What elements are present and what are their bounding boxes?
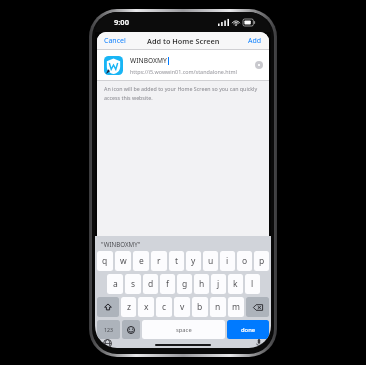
button[interactable]: x xyxy=(138,297,154,317)
button[interactable]: done xyxy=(227,320,269,339)
button[interactable]: b xyxy=(192,297,208,317)
button[interactable]: y xyxy=(186,251,201,271)
button[interactable]: k xyxy=(228,274,243,294)
button[interactable]: Cancel xyxy=(97,34,133,48)
button[interactable]: d xyxy=(143,274,158,294)
staticText: v xyxy=(180,301,185,313)
staticText: r xyxy=(157,255,161,267)
staticText: c xyxy=(162,301,167,313)
staticText: e xyxy=(139,255,144,267)
staticText: f xyxy=(166,278,169,290)
staticText: g xyxy=(182,278,188,290)
button[interactable]: o xyxy=(237,251,252,271)
button[interactable]: q xyxy=(97,251,113,271)
button[interactable]: r xyxy=(151,251,167,271)
button[interactable]: l xyxy=(245,274,260,294)
button[interactable]: 123 xyxy=(97,320,120,339)
staticText: q xyxy=(102,255,108,267)
staticText: k xyxy=(233,278,238,290)
button[interactable]: Emoji xyxy=(122,320,140,339)
staticText: i xyxy=(226,255,229,267)
button[interactable]: s xyxy=(125,274,141,294)
button[interactable]: i xyxy=(220,251,235,271)
staticText: 9:00 xyxy=(114,17,129,27)
button[interactable]: j xyxy=(211,274,226,294)
staticText: space xyxy=(176,326,192,334)
staticText: https://i5.wowwin01.com/standalone.html xyxy=(130,68,237,75)
button[interactable]: v xyxy=(174,297,190,317)
button[interactable]: Clear text xyxy=(255,61,263,69)
staticText: w xyxy=(120,255,127,267)
staticText: Add to Home Screen xyxy=(147,36,220,46)
staticText: y xyxy=(191,255,196,267)
staticText: j xyxy=(217,278,220,290)
button[interactable]: h xyxy=(194,274,209,294)
button[interactable]: Shift xyxy=(97,297,119,317)
button[interactable]: w xyxy=(115,251,131,271)
button[interactable]: Backspace xyxy=(246,297,269,317)
staticText: z xyxy=(127,301,131,313)
staticText: p xyxy=(259,255,265,267)
staticText: 123 xyxy=(104,326,113,333)
button[interactable]: Dictate xyxy=(254,339,264,348)
staticText: access this website. xyxy=(104,94,153,101)
button[interactable]: g xyxy=(177,274,192,294)
staticText: u xyxy=(208,255,214,267)
button[interactable]: u xyxy=(203,251,218,271)
staticText: h xyxy=(199,278,205,290)
staticText: x xyxy=(144,301,149,313)
staticText: s xyxy=(131,278,136,290)
staticText: Cancel xyxy=(104,36,126,46)
staticText: o xyxy=(242,255,248,267)
button[interactable]: space xyxy=(142,320,225,339)
staticText: done xyxy=(241,326,256,334)
staticText: An icon will be added to your Home Scree… xyxy=(104,85,258,92)
button[interactable]: e xyxy=(133,251,149,271)
staticText: "WINBOXMY" xyxy=(101,240,141,248)
staticText: n xyxy=(215,301,221,313)
staticText: a xyxy=(113,278,118,290)
button[interactable]: z xyxy=(121,297,136,317)
button[interactable]: p xyxy=(254,251,269,271)
button[interactable]: n xyxy=(210,297,226,317)
button[interactable]: t xyxy=(169,251,184,271)
button[interactable]: Change keyboard language xyxy=(102,339,112,348)
staticText: WINBOXMY xyxy=(130,56,167,65)
button[interactable]: Add xyxy=(241,34,269,48)
button[interactable]: f xyxy=(160,274,175,294)
button[interactable]: c xyxy=(156,297,172,317)
staticText: d xyxy=(148,278,154,290)
staticText: t xyxy=(175,255,179,267)
staticText: l xyxy=(251,278,254,290)
button[interactable]: m xyxy=(228,297,244,317)
staticText: Add xyxy=(248,36,262,46)
staticText: m xyxy=(232,301,240,313)
button[interactable]: a xyxy=(107,274,123,294)
staticText: b xyxy=(197,301,203,313)
